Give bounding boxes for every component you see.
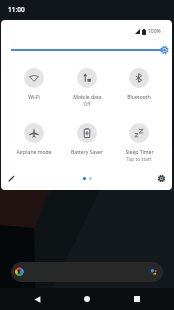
staticText: Off bbox=[83, 101, 91, 108]
button[interactable]: Sleep Timer bbox=[113, 123, 165, 163]
staticText: Bluetooth bbox=[127, 94, 151, 101]
button[interactable]: Airplane mode bbox=[8, 123, 60, 156]
staticText: Sleep Timer bbox=[125, 149, 154, 156]
staticText: Mobile data bbox=[73, 94, 102, 101]
staticText: Wi-Fi bbox=[28, 94, 40, 101]
button[interactable]: Search bbox=[11, 262, 163, 282]
button[interactable]: Mobile data bbox=[61, 68, 113, 108]
button[interactable]: Settings bbox=[154, 171, 169, 186]
button[interactable]: Battery Saver bbox=[61, 123, 113, 156]
button[interactable]: Wi-Fi bbox=[8, 68, 60, 101]
staticText: 11:00 bbox=[8, 5, 25, 14]
button[interactable]: Home bbox=[74, 288, 99, 310]
button[interactable]: Bluetooth bbox=[113, 68, 165, 101]
button[interactable]: Back bbox=[25, 288, 50, 310]
staticText: 100% bbox=[148, 28, 161, 35]
button[interactable]: Recents bbox=[124, 288, 149, 310]
staticText: Tap to start bbox=[126, 156, 152, 163]
button[interactable]: Edit tiles bbox=[4, 171, 19, 186]
staticText: Battery Saver bbox=[71, 149, 103, 156]
staticText: Airplane mode bbox=[16, 149, 52, 156]
